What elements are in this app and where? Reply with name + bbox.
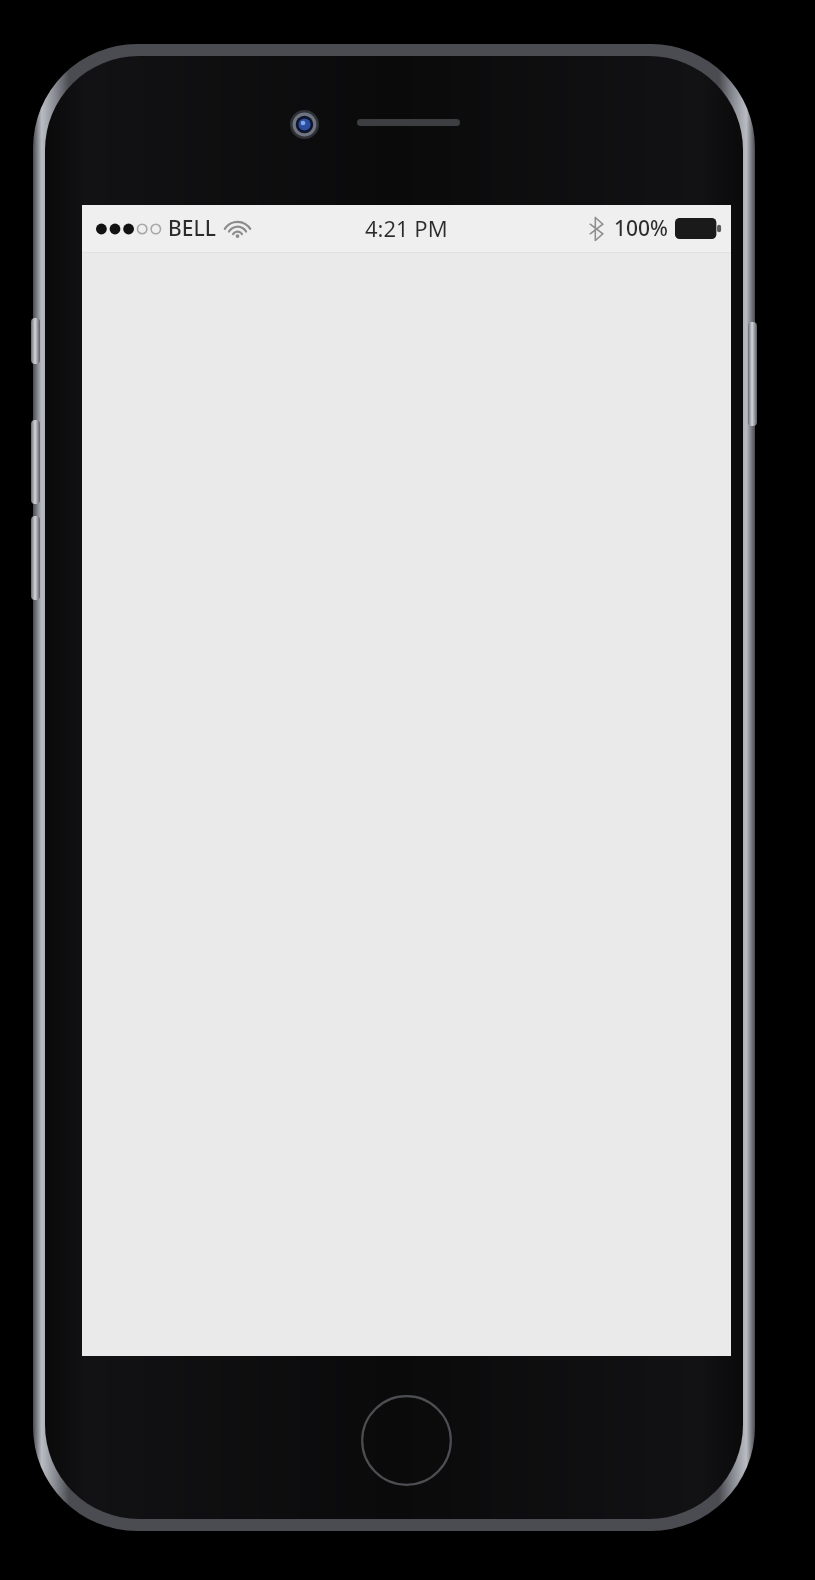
staticText: 4:21 PM	[365, 213, 448, 243]
button[interactable]: Volume up	[31, 420, 40, 504]
button[interactable]: Silent switch	[31, 318, 40, 364]
staticText: BELL	[168, 214, 216, 243]
staticText: 100%	[614, 214, 668, 243]
button[interactable]: BELL	[96, 214, 250, 243]
button[interactable]: 100%	[589, 214, 722, 243]
button[interactable]: Power	[748, 322, 757, 426]
button[interactable]: Home	[361, 1395, 452, 1486]
button[interactable]: Volume down	[31, 516, 40, 600]
